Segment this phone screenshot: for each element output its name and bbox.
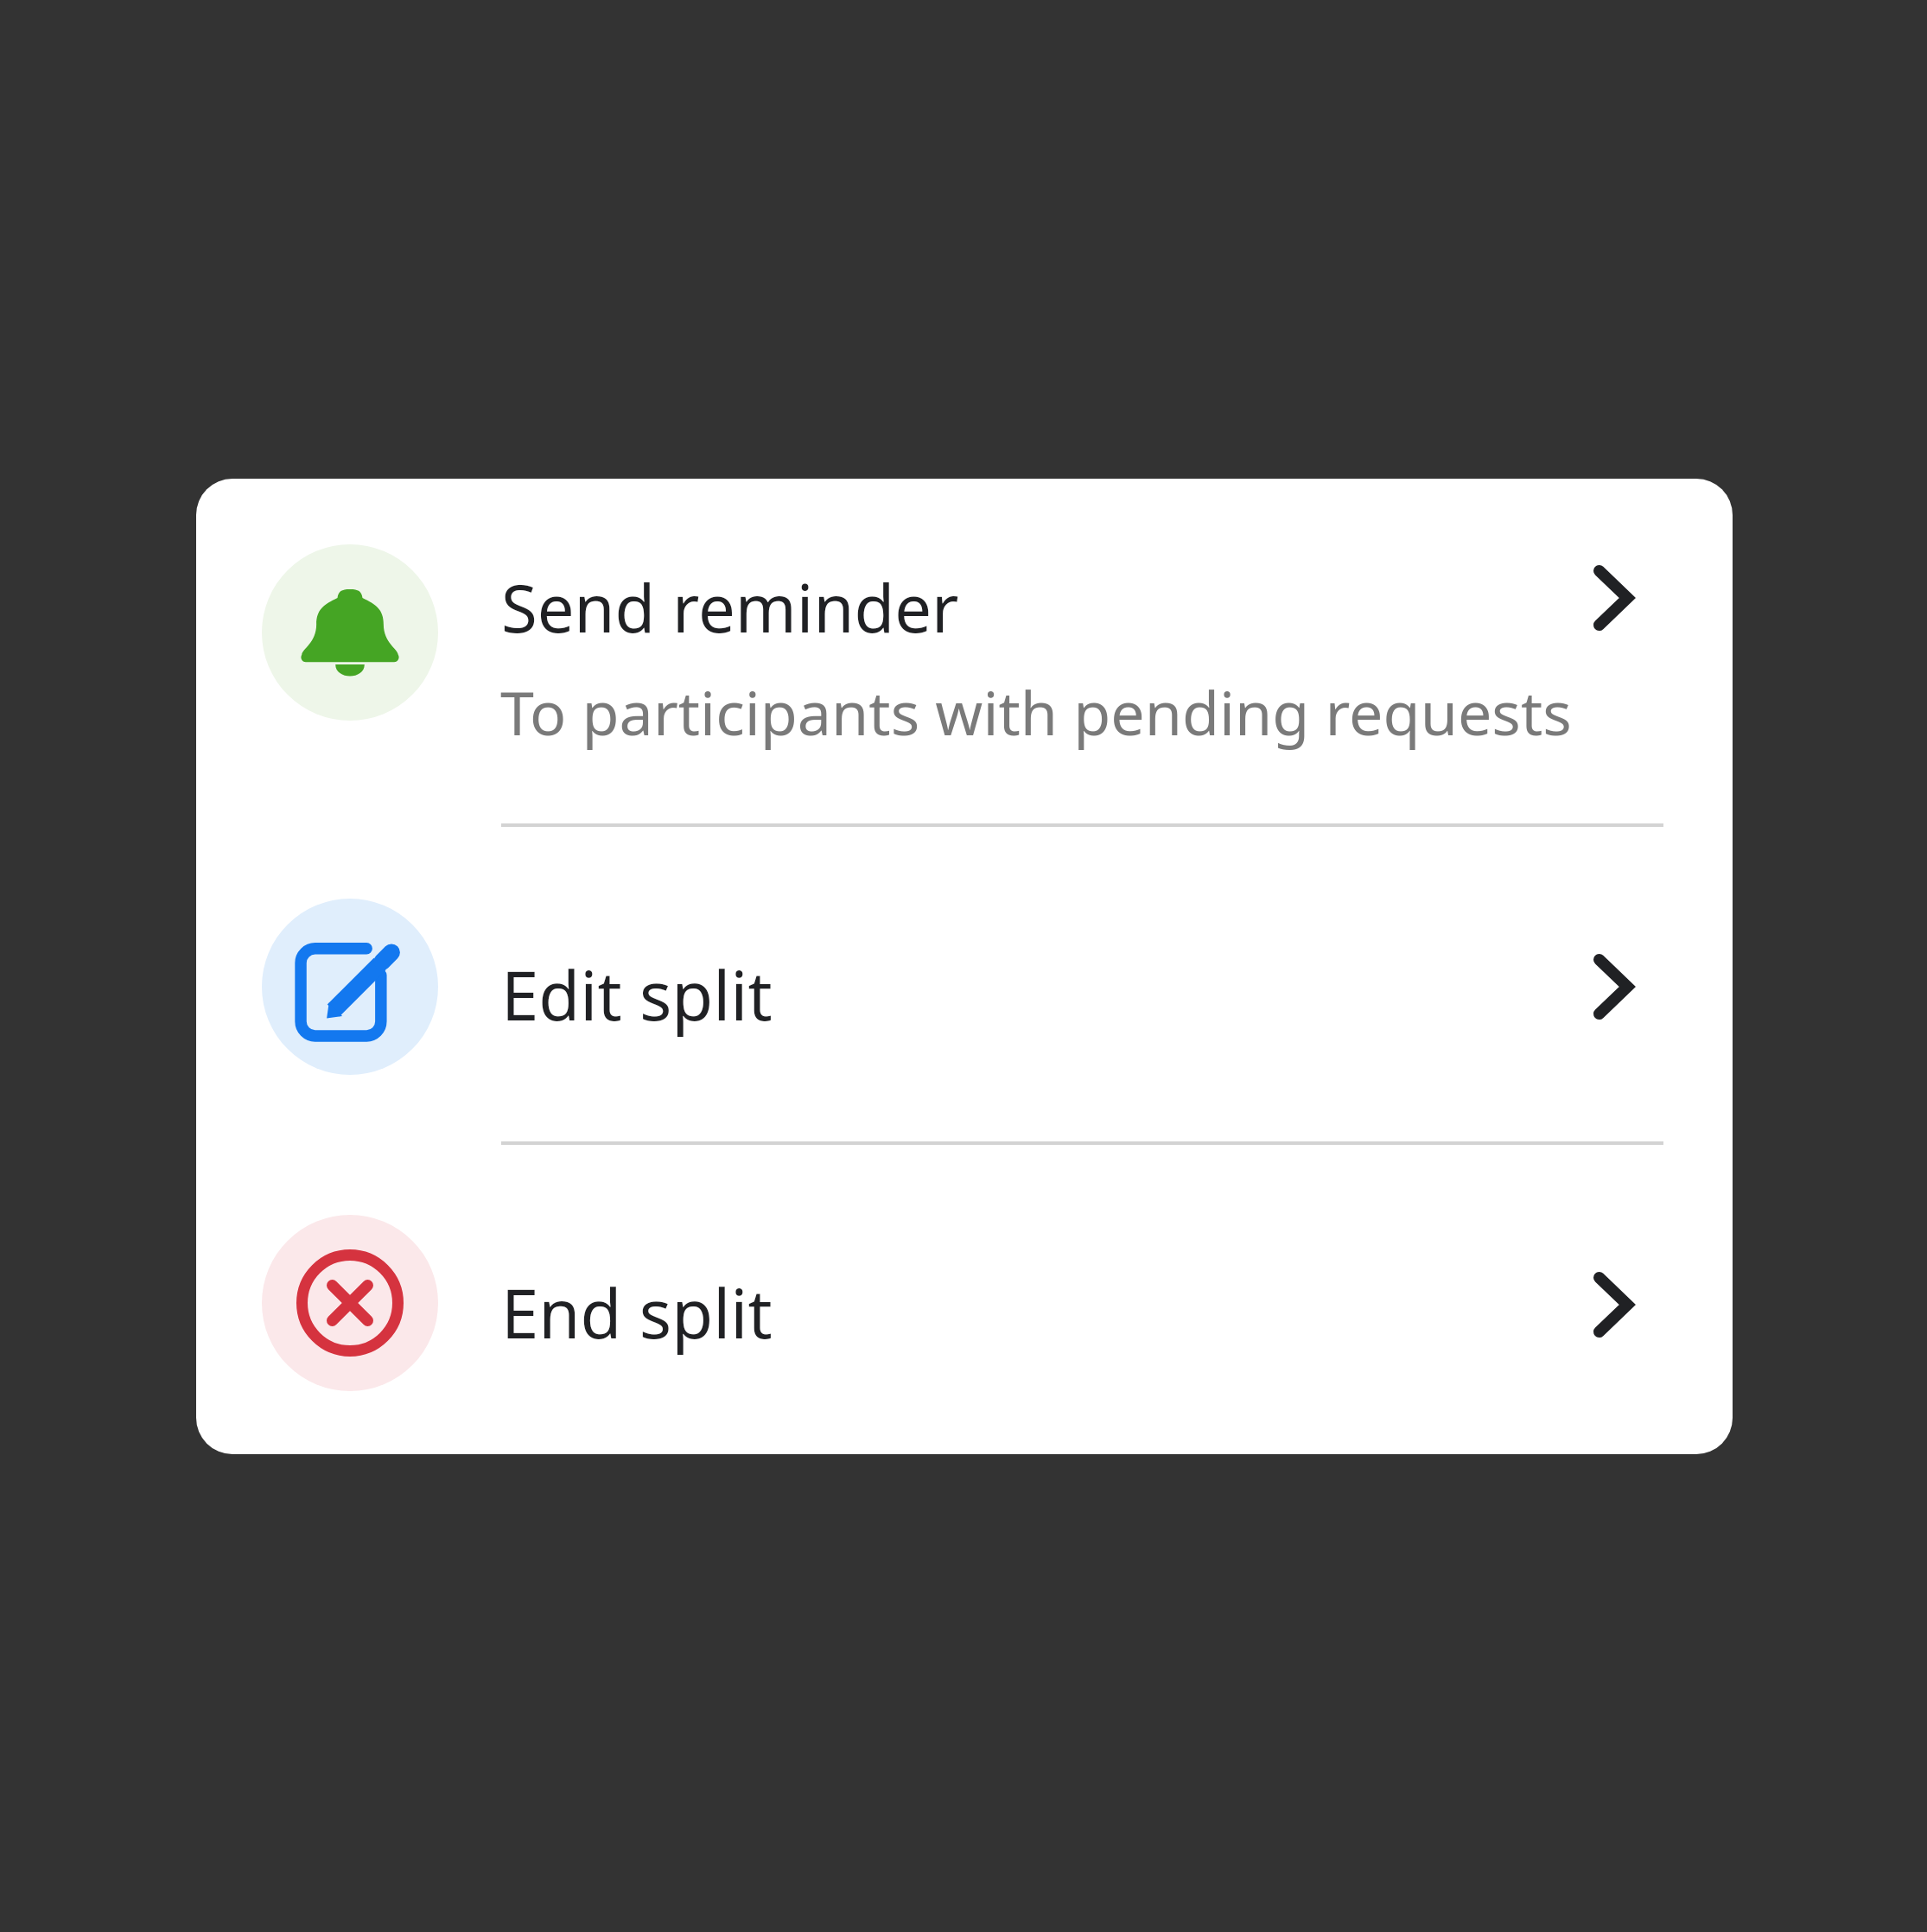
other: Send reminder	[300, 582, 400, 683]
button[interactable]: Send reminder	[196, 479, 1733, 824]
button[interactable]: End split	[196, 1146, 1733, 1454]
other: End split	[296, 1249, 404, 1357]
staticText: Send reminder	[501, 562, 959, 652]
other: Open	[1593, 954, 1633, 1020]
staticText: To participants with pending requests	[500, 670, 1572, 753]
other: Open	[1593, 1272, 1633, 1338]
other: Open	[1593, 565, 1633, 631]
button[interactable]: Edit split	[196, 827, 1733, 1146]
other: Edit split	[295, 931, 405, 1042]
staticText: End split	[501, 1267, 773, 1358]
staticText: Edit split	[501, 949, 773, 1040]
